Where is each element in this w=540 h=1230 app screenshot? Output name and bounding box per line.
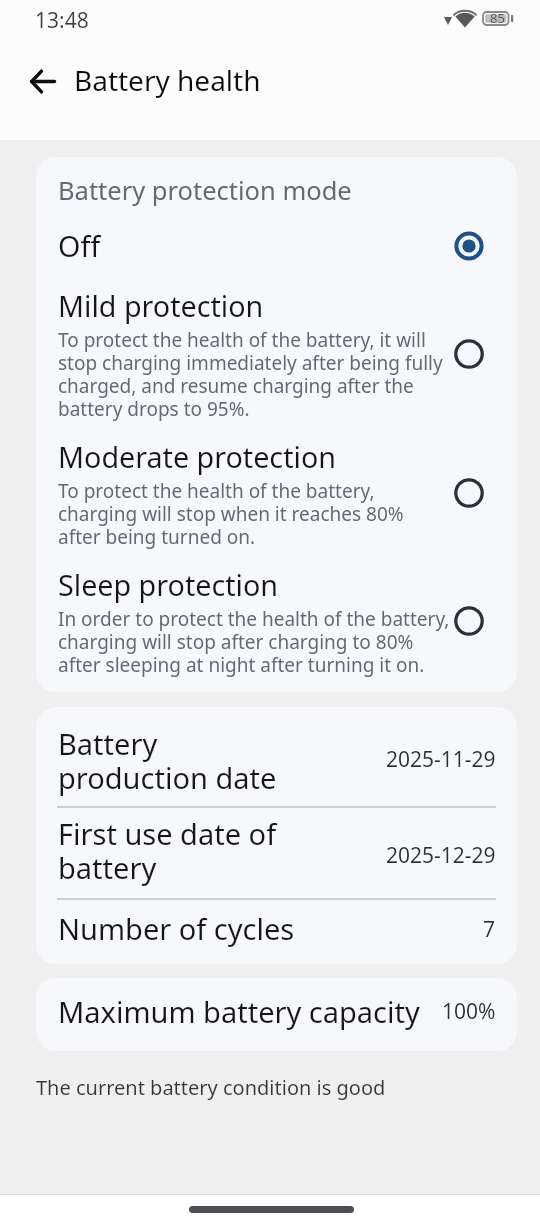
staticText: Moderate protection (58, 437, 336, 476)
staticText: Mild protection (58, 286, 264, 325)
staticText: To protect the health of the battery, it… (58, 327, 450, 422)
button[interactable] (36, 212, 517, 272)
button[interactable]: Back (16, 55, 68, 107)
staticText: Battery production date (58, 724, 277, 797)
button[interactable]: First use date of battery (36, 806, 517, 898)
staticText: 13:48 (35, 6, 89, 35)
staticText: To protect the health of the battery, ch… (58, 478, 450, 550)
staticText: 7 (483, 915, 496, 944)
staticText: First use date of battery (58, 814, 277, 887)
button[interactable] (36, 425, 517, 552)
staticText: 85 (490, 9, 505, 27)
staticText: Battery health (74, 61, 261, 99)
staticText: 100% (442, 997, 496, 1026)
staticText: Sleep protection (58, 565, 279, 604)
button[interactable]: Number of cycles (36, 898, 517, 964)
staticText: Number of cycles (58, 909, 295, 948)
staticText: Battery protection mode (58, 173, 352, 208)
staticText: 2025-11-29 (386, 745, 496, 774)
button[interactable]: Maximum battery capacity (36, 978, 517, 1051)
staticText: 2025-12-29 (386, 841, 496, 870)
staticText: In order to protect the health of the ba… (58, 606, 450, 678)
staticText: Off (58, 226, 101, 265)
button[interactable]: Battery production date (36, 707, 517, 806)
staticText: The current battery condition is good (36, 1074, 386, 1101)
staticText: Maximum battery capacity (58, 992, 420, 1031)
button[interactable] (36, 272, 517, 425)
button[interactable] (36, 552, 517, 692)
